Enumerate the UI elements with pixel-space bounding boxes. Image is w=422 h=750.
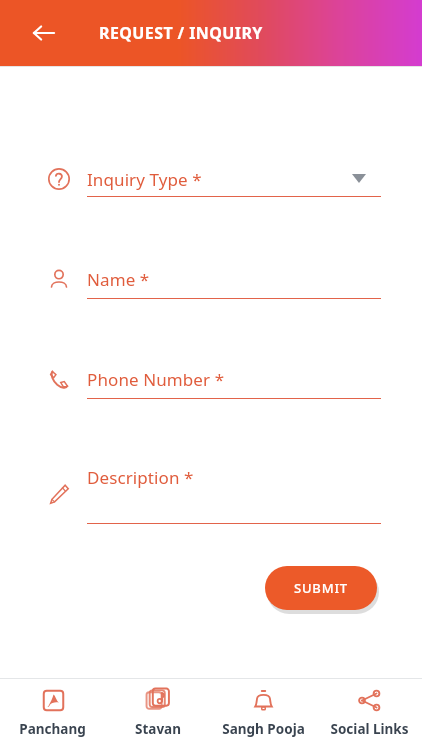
staticText: Inquiry Type *: [87, 168, 202, 191]
button[interactable]: Social Links: [316, 679, 422, 750]
button[interactable]: Stavan: [105, 679, 210, 750]
staticText: Social Links: [330, 720, 409, 738]
button[interactable]: Back: [20, 9, 68, 57]
button[interactable]: Description *: [87, 463, 381, 533]
button[interactable]: Name *: [87, 265, 381, 308]
staticText: Description *: [87, 466, 194, 489]
staticText: REQUEST / INQUIRY: [99, 22, 263, 44]
staticText: Stavan: [135, 720, 181, 738]
staticText: Name *: [87, 268, 150, 291]
staticText: Panchang: [19, 720, 86, 738]
button[interactable]: Phone Number *: [87, 365, 381, 408]
button[interactable]: Inquiry Type *: [87, 165, 381, 206]
button[interactable]: SUBMIT: [265, 566, 377, 610]
staticText: Sangh Pooja: [222, 720, 305, 738]
staticText: Phone Number *: [87, 368, 225, 391]
button[interactable]: Panchang: [0, 679, 105, 750]
staticText: SUBMIT: [294, 579, 348, 597]
button[interactable]: Sangh Pooja: [210, 679, 316, 750]
